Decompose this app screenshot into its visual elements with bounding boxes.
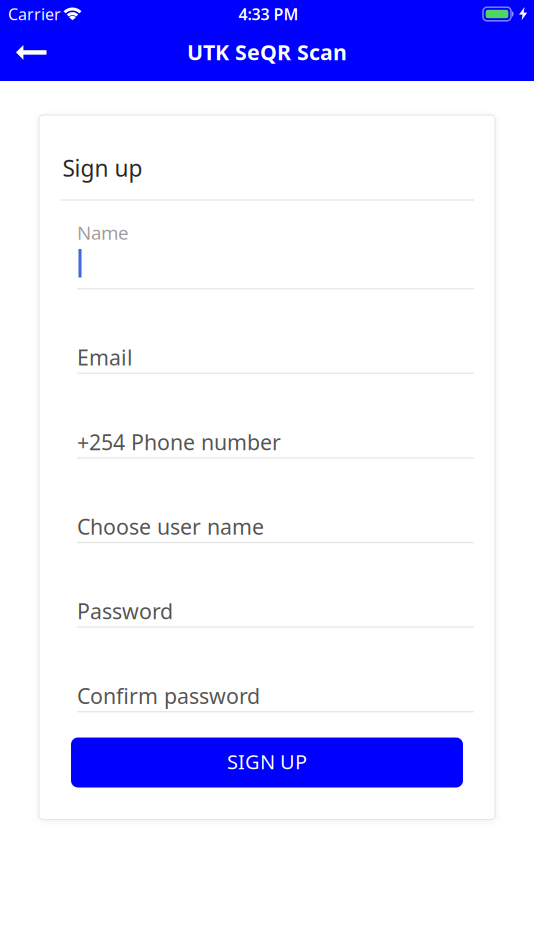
staticText: Sign up [62,153,142,183]
button[interactable]: Password [77,572,474,628]
staticText: Password [77,597,173,625]
button[interactable]: Back [0,28,47,81]
staticText: SIGN UP [227,748,307,775]
staticText: +254 Phone number [77,428,281,456]
button[interactable]: SIGN UP [71,737,463,787]
button[interactable]: Confirm password [77,656,474,712]
button[interactable]: Choose user name [77,487,474,543]
button[interactable]: Email [77,318,474,374]
staticText: UTK SeQR Scan [187,38,347,66]
staticText: Choose user name [77,512,264,541]
staticText: Confirm password [77,681,260,710]
staticText: 4:33 PM [238,3,298,25]
staticText: Carrier [8,3,61,25]
staticText: Email [77,343,133,371]
button[interactable]: +254 Phone number [77,403,474,459]
staticText: Name [77,220,129,245]
button[interactable]: Name [77,219,474,289]
